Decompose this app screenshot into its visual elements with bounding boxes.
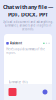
staticText: Assistant bbox=[10, 41, 22, 45]
staticText: Here's a quick summary of the report. bbox=[6, 47, 45, 54]
staticText: Chat with any file — bbox=[3, 3, 53, 11]
staticText: Upload a document and ask anything. bbox=[2, 20, 53, 24]
staticText: PDF, DOCX, PPT bbox=[8, 11, 48, 18]
staticText: seconds. bbox=[22, 27, 34, 31]
staticText: Summarize this bbox=[8, 80, 27, 84]
staticText: Summaries, answers and insights in bbox=[4, 24, 51, 27]
